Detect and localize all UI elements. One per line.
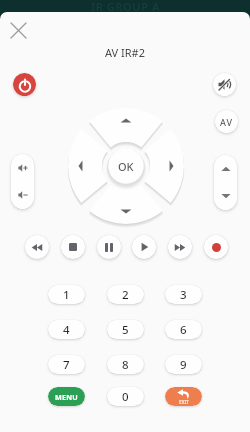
button[interactable]: Channel up — [214, 155, 237, 182]
staticText: 7 — [63, 357, 70, 373]
button[interactable]: Play — [132, 235, 156, 259]
button[interactable]: OK — [108, 148, 144, 184]
staticText: 8 — [122, 357, 129, 373]
staticText: 0 — [122, 389, 129, 405]
button[interactable]: Pause — [97, 235, 121, 259]
staticText: 9 — [180, 357, 187, 373]
staticText: 3 — [180, 287, 187, 303]
staticText: 6 — [180, 322, 187, 338]
button[interactable]: Stop — [61, 235, 85, 259]
button[interactable]: Record — [204, 235, 228, 259]
button[interactable]: Channel down — [214, 182, 237, 210]
button[interactable]: Rewind — [25, 235, 49, 259]
staticText: OK — [118, 159, 134, 174]
button[interactable]: 0 — [107, 387, 144, 406]
button[interactable]: Exit — [165, 387, 202, 406]
button[interactable]: AV source — [215, 110, 238, 133]
button[interactable]: Down — [108, 198, 144, 224]
button[interactable]: Volume up — [11, 154, 34, 181]
staticText: AV — [220, 116, 233, 128]
button[interactable]: 7 — [48, 355, 85, 374]
staticText: IR GROUP A — [91, 0, 160, 14]
button[interactable]: 2 — [107, 285, 144, 304]
staticText: EXIT — [179, 399, 189, 405]
button[interactable]: Power — [13, 73, 36, 96]
staticText: 5 — [122, 322, 129, 338]
staticText: 2 — [122, 287, 129, 303]
button[interactable]: 3 — [165, 285, 202, 304]
button[interactable]: Left — [68, 148, 94, 184]
button[interactable]: Right — [158, 148, 184, 184]
staticText: MENU — [55, 392, 78, 402]
button[interactable]: 8 — [107, 355, 144, 374]
button[interactable]: MENU — [48, 387, 85, 406]
button[interactable]: 5 — [107, 320, 144, 339]
button[interactable]: 6 — [165, 320, 202, 339]
button[interactable]: 4 — [48, 320, 85, 339]
staticText: 1 — [63, 287, 70, 303]
button[interactable]: Mute — [213, 73, 236, 96]
button[interactable]: Close — [4, 16, 32, 44]
button[interactable]: 1 — [48, 285, 85, 304]
staticText: AV IR#2 — [105, 45, 146, 60]
staticText: 4 — [63, 322, 70, 338]
button[interactable]: Up — [108, 108, 144, 134]
button[interactable]: Fast forward — [168, 235, 192, 259]
button[interactable]: 9 — [165, 355, 202, 374]
button[interactable]: Volume down — [11, 181, 34, 209]
